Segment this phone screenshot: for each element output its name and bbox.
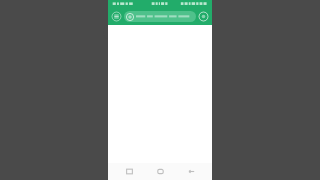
button[interactable]: Recents (119, 163, 139, 180)
button[interactable]: Back (181, 163, 201, 180)
button[interactable] (124, 11, 196, 22)
button[interactable]: Menu (111, 11, 122, 22)
button[interactable]: Home (150, 163, 170, 180)
button[interactable]: Profile (198, 11, 209, 22)
